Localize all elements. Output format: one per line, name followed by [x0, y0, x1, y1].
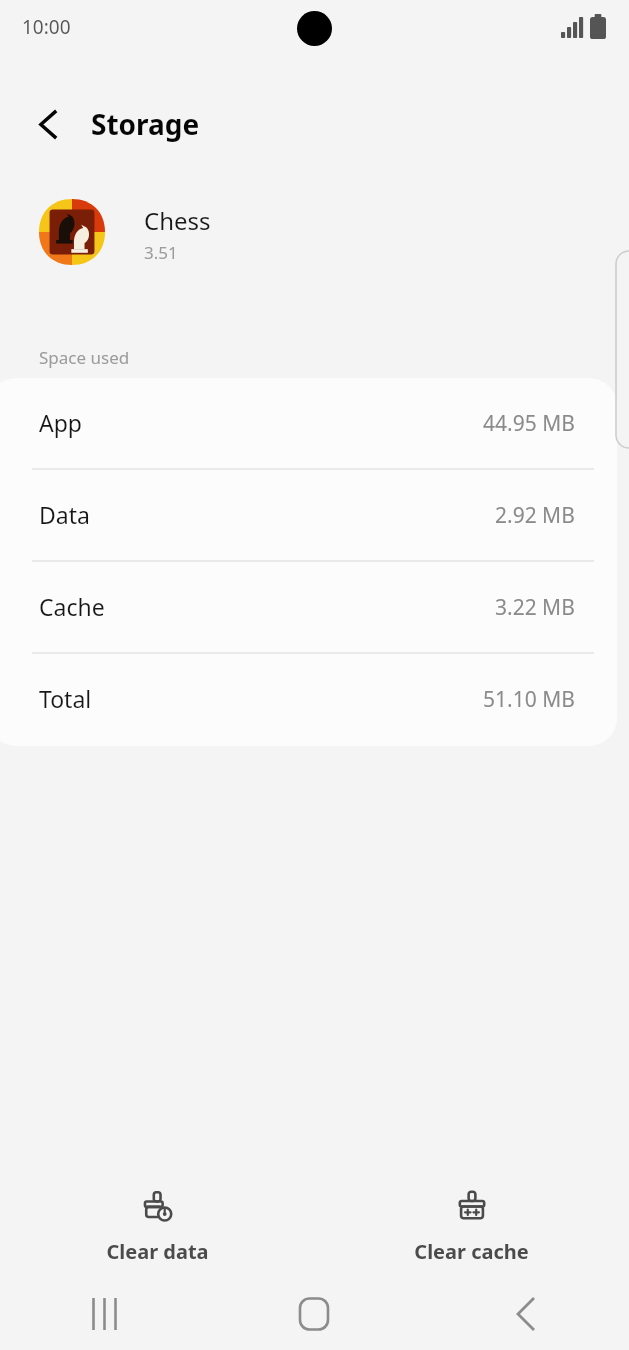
staticText: App	[39, 407, 82, 438]
staticText: 3.22 MB	[495, 593, 575, 622]
staticText: Total	[39, 683, 92, 714]
button[interactable]: App	[0, 378, 617, 470]
staticText: 2.92 MB	[495, 501, 575, 530]
button[interactable]: Clear data	[0, 1174, 314, 1243]
staticText: 44.95 MB	[483, 409, 575, 438]
staticText: 51.10 MB	[483, 685, 575, 714]
staticText: 3.51	[144, 241, 178, 264]
button[interactable]: Data	[0, 470, 617, 562]
staticText: Cache	[39, 591, 105, 622]
button[interactable]: Clear cache	[314, 1174, 629, 1243]
button[interactable]: Back	[25, 100, 73, 148]
button[interactable]: Chess	[24, 186, 594, 278]
staticText: Storage	[91, 105, 200, 143]
button[interactable]: Recent apps	[0, 1278, 209, 1350]
button[interactable]: Back	[419, 1278, 629, 1350]
staticText: 10:00	[22, 14, 71, 40]
button[interactable]: Home	[209, 1278, 419, 1350]
staticText: Data	[39, 499, 90, 530]
staticText: Clear data	[106, 1238, 209, 1265]
staticText: Chess	[144, 204, 211, 237]
staticText: Space used	[39, 346, 130, 369]
staticText: Clear cache	[414, 1238, 529, 1265]
button[interactable]: Total	[0, 654, 617, 746]
button[interactable]: Cache	[0, 562, 617, 654]
